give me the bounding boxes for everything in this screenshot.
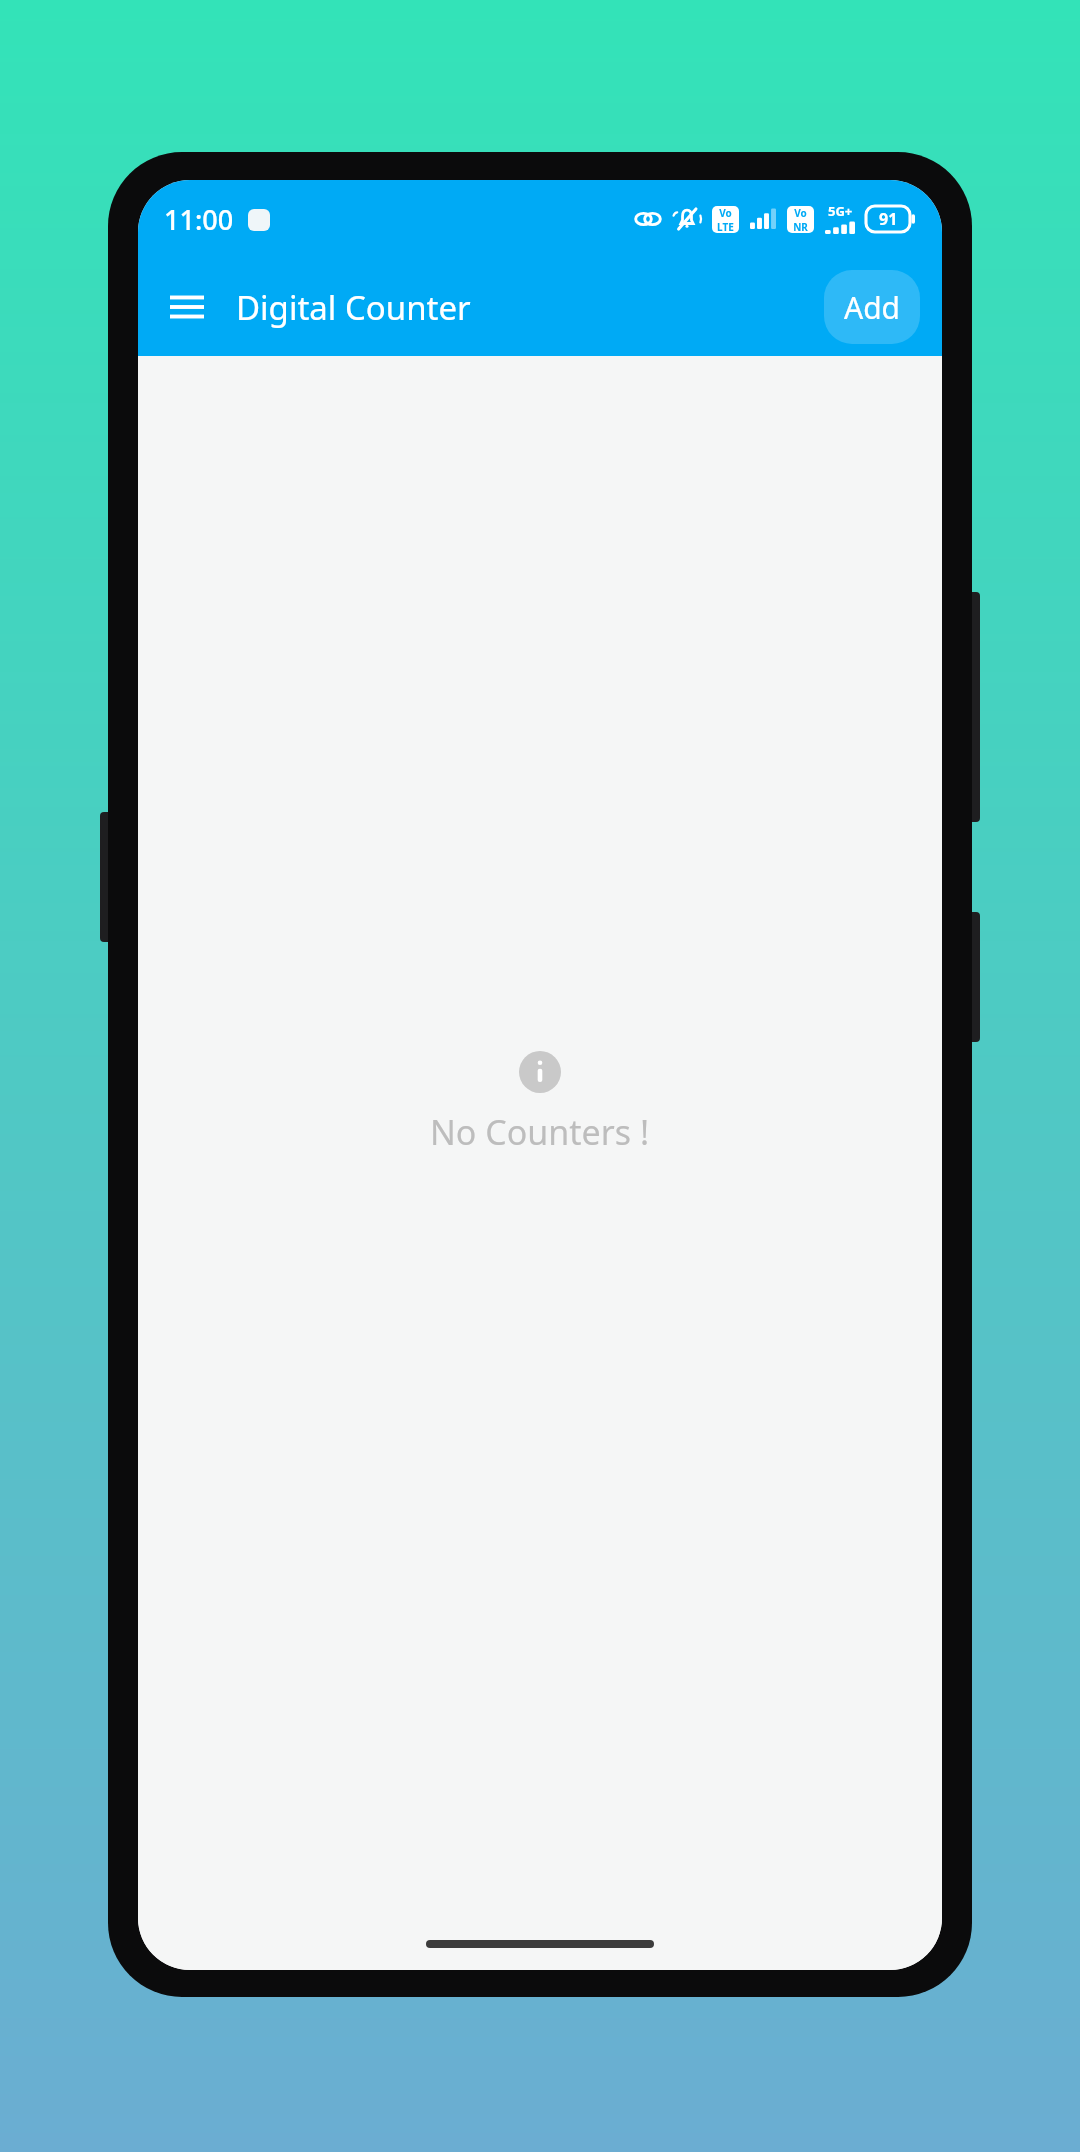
staticText: NR	[793, 220, 808, 233]
staticText: Vo	[719, 206, 732, 220]
staticText: No Counters !	[430, 1109, 650, 1155]
staticText: 11:00	[164, 201, 234, 238]
staticText: LTE	[717, 220, 734, 233]
staticText: Vo	[794, 206, 807, 220]
staticText: 5G+	[828, 202, 853, 220]
staticText: 91	[879, 208, 898, 230]
button[interactable]: Open navigation menu	[160, 280, 214, 334]
staticText: Add	[844, 287, 901, 328]
button[interactable]: Add	[824, 270, 920, 344]
staticText: Digital Counter	[236, 285, 471, 330]
